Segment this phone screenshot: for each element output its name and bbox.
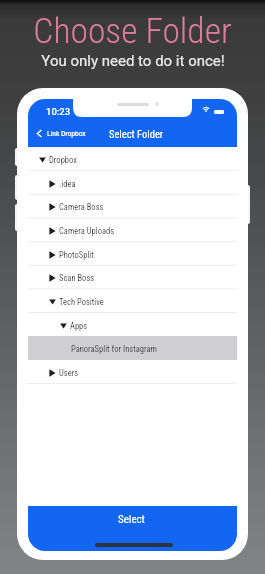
button[interactable]: Camera Uploads	[28, 218, 237, 242]
button[interactable]: Select	[28, 506, 237, 551]
button[interactable]: Scan Boss	[28, 265, 237, 289]
staticText: Camera Uploads	[59, 226, 115, 236]
staticText: Camera Boss	[59, 202, 104, 212]
staticText: You only need to do it once!	[41, 52, 225, 70]
staticText: Dropbox	[49, 155, 77, 165]
button[interactable]: Apps	[28, 313, 237, 337]
staticText: Select	[118, 513, 145, 526]
staticText: PhotoSplit	[59, 250, 94, 260]
staticText: 10:23	[46, 106, 71, 117]
staticText: Select Folder	[109, 128, 164, 140]
staticText: Apps	[70, 321, 88, 331]
staticText: Users	[59, 368, 79, 378]
staticText: Scan Boss	[59, 273, 95, 283]
button[interactable]: .idea	[28, 171, 237, 195]
button[interactable]: PanoraSplit for Instagram	[28, 336, 237, 360]
button[interactable]: Dropbox	[28, 147, 237, 171]
button[interactable]: Camera Boss	[28, 194, 237, 218]
button[interactable]: Link Dropbox	[34, 119, 86, 147]
staticText: Link Dropbox	[47, 129, 86, 138]
button[interactable]: Tech Positive	[28, 289, 237, 313]
button[interactable]: Users	[28, 360, 237, 384]
staticText: Tech Positive	[59, 297, 104, 307]
staticText: .idea	[59, 179, 76, 189]
button[interactable]: PhotoSplit	[28, 242, 237, 266]
staticText: Choose Folder	[33, 10, 232, 52]
staticText: PanoraSplit for Instagram	[71, 344, 157, 354]
